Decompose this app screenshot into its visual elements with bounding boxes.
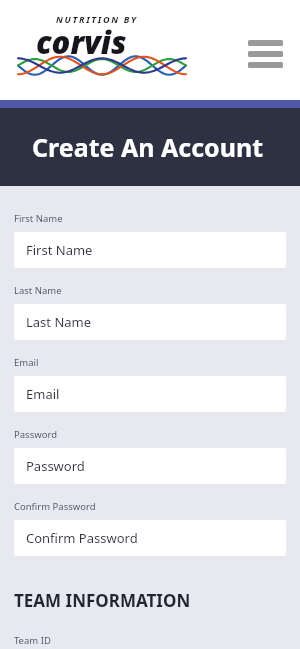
- staticText: Email: [26, 385, 60, 403]
- staticText: Password: [26, 457, 85, 475]
- staticText: Last Name: [14, 284, 62, 297]
- staticText: Password: [14, 428, 57, 441]
- staticText: Create An Account: [32, 130, 264, 164]
- staticText: TEAM INFORMATION: [14, 589, 191, 612]
- button[interactable]: First Name: [14, 232, 286, 268]
- button[interactable]: Password: [14, 448, 286, 484]
- staticText: Confirm Password: [14, 500, 96, 513]
- staticText: corvis: [36, 21, 127, 63]
- staticText: Confirm Password: [26, 529, 138, 547]
- button[interactable]: Open navigation menu: [243, 36, 288, 72]
- staticText: Email: [14, 356, 39, 369]
- staticText: Last Name: [26, 313, 92, 331]
- staticText: NUTRITION BY: [56, 13, 138, 25]
- staticText: Team ID: [14, 634, 51, 647]
- staticText: First Name: [14, 212, 63, 225]
- button[interactable]: Confirm Password: [14, 520, 286, 556]
- button[interactable]: Email: [14, 376, 286, 412]
- button[interactable]: Last Name: [14, 304, 286, 340]
- staticText: First Name: [26, 241, 93, 259]
